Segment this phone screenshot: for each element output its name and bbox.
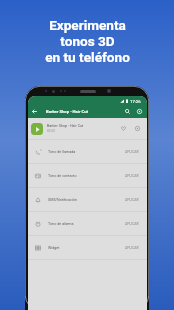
button[interactable]: APLICAR (122, 171, 142, 181)
staticText: Tono de contacto (48, 174, 77, 178)
button[interactable]: Search (122, 106, 133, 117)
staticText: Widget (48, 246, 60, 250)
staticText: APLICAR (125, 198, 139, 202)
staticText: Barber Shop - Hair Cut (46, 109, 88, 114)
button[interactable]: Tono de alarma (28, 212, 147, 235)
button[interactable]: Tono de llamada (28, 140, 147, 163)
button[interactable]: APLICAR (122, 219, 142, 229)
button[interactable]: APLICAR (122, 147, 142, 157)
staticText: tonos 3D (60, 33, 115, 49)
button[interactable]: Settings (134, 106, 145, 117)
staticText: APLICAR (125, 222, 139, 226)
button[interactable]: Tono de contacto (28, 164, 147, 187)
button[interactable]: APLICAR (122, 243, 142, 253)
staticText: Barber Shop - Hair Cut (47, 124, 84, 128)
staticText: APLICAR (125, 150, 139, 154)
staticText: 02:35 (47, 129, 55, 133)
button[interactable]: Favourite (118, 123, 129, 134)
staticText: APLICAR (125, 174, 139, 178)
button[interactable]: Back (28, 105, 41, 118)
button[interactable]: Widget (28, 236, 147, 259)
staticText: Experimenta (49, 17, 126, 33)
staticText: Tono de alarma (48, 222, 74, 226)
button[interactable]: Barber Shop - Hair Cut (28, 118, 147, 139)
staticText: en tu teléfono (45, 49, 130, 65)
staticText: 17:26 (130, 99, 141, 104)
staticText: APLICAR (125, 246, 139, 250)
staticText: SMS/Notificación (48, 198, 77, 202)
button[interactable]: APLICAR (122, 195, 142, 205)
button[interactable]: SMS/Notificación (28, 188, 147, 211)
staticText: Tono de llamada (48, 150, 76, 154)
button[interactable]: Share (132, 123, 143, 134)
